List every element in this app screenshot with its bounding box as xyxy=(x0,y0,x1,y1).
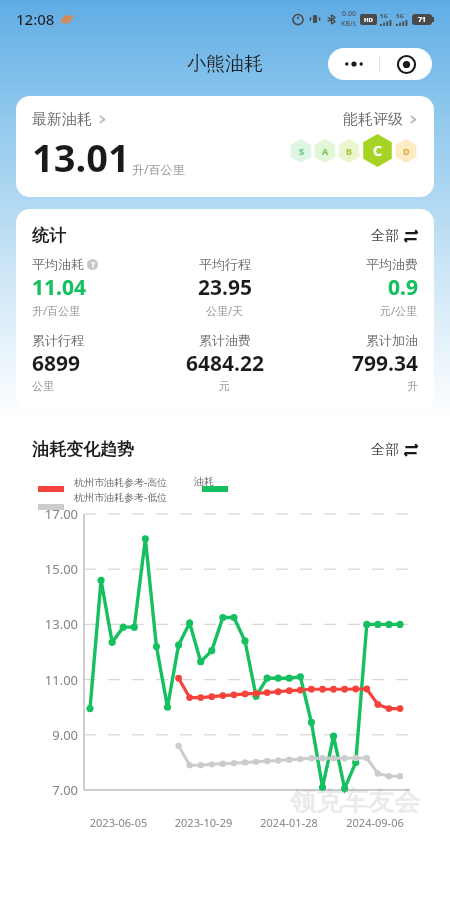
staticText: 5G xyxy=(396,12,404,20)
staticText: 2024-09-06 xyxy=(332,815,418,830)
staticText: 元 xyxy=(219,379,230,393)
button[interactable]: S xyxy=(289,139,313,163)
staticText: 元/公里 xyxy=(380,303,418,318)
button[interactable]: More options xyxy=(328,48,379,80)
staticText: 累计油费 xyxy=(199,332,251,348)
staticText: 公里/天 xyxy=(206,303,244,318)
staticText: 平均油费 xyxy=(366,256,418,272)
staticText: HD xyxy=(364,16,373,24)
staticText: 13.00 xyxy=(30,615,78,633)
staticText: 799.34 xyxy=(352,349,418,378)
staticText: 9.00 xyxy=(30,726,78,744)
staticText: 6484.22 xyxy=(186,349,264,378)
staticText: 2024-01-28 xyxy=(246,815,332,830)
staticText: B xyxy=(346,145,352,157)
staticText: 2023-10-29 xyxy=(161,815,246,830)
staticText: KB/s xyxy=(341,19,357,29)
button[interactable]: D xyxy=(394,139,418,163)
staticText: 全部 xyxy=(371,441,399,459)
staticText: 全部 xyxy=(371,227,399,245)
staticText: 15.00 xyxy=(30,560,78,578)
staticText: ? xyxy=(91,259,95,270)
staticText: 升 xyxy=(407,379,418,393)
staticText: 统计 xyxy=(32,225,66,246)
button[interactable]: 全部 xyxy=(371,441,418,459)
staticText: 油耗 xyxy=(194,475,214,488)
staticText: 小熊油耗 xyxy=(187,52,263,76)
button[interactable]: 最新油耗 xyxy=(32,110,107,129)
staticText: 公里 xyxy=(32,379,54,393)
staticText: 5G xyxy=(380,12,388,20)
staticText: 杭州市油耗参考-高位 xyxy=(74,475,168,489)
button[interactable]: 全部 xyxy=(371,227,418,245)
staticText: 能耗评级 xyxy=(343,110,403,129)
button[interactable]: C xyxy=(361,134,394,167)
staticText: 12:08 xyxy=(16,9,55,29)
button[interactable]: A xyxy=(313,139,337,163)
staticText: 领克车友会 xyxy=(290,785,420,818)
staticText: 7.00 xyxy=(30,781,78,799)
staticText: 71 xyxy=(418,15,427,25)
staticText: 最新油耗 xyxy=(32,110,92,129)
staticText: S xyxy=(299,145,304,157)
staticText: 0.9 xyxy=(388,273,418,302)
staticText: 23.95 xyxy=(198,273,252,302)
staticText: 升/百公里 xyxy=(32,303,81,318)
staticText: C xyxy=(373,141,382,160)
staticText: 0.00 xyxy=(342,9,356,19)
staticText: 13.01 xyxy=(32,131,130,183)
staticText: 油耗变化趋势 xyxy=(32,439,134,460)
staticText: 17.00 xyxy=(30,505,78,523)
button[interactable]: Account xyxy=(380,48,432,80)
staticText: 平均油耗 xyxy=(32,256,84,272)
staticText: 6899 xyxy=(32,349,81,378)
button[interactable]: 能耗评级 xyxy=(343,110,418,129)
staticText: 升/百公里 xyxy=(132,161,185,177)
staticText: 11.00 xyxy=(30,671,78,689)
staticText: 累计加油 xyxy=(366,332,418,348)
staticText: A xyxy=(322,145,329,157)
staticText: 杭州市油耗参考-低位 xyxy=(74,490,168,504)
staticText: 累计行程 xyxy=(32,332,84,348)
staticText: 平均行程 xyxy=(199,256,251,272)
staticText: 2023-06-05 xyxy=(76,815,161,830)
staticText: D xyxy=(403,145,410,157)
button[interactable]: B xyxy=(337,139,361,163)
staticText: 11.04 xyxy=(32,273,86,302)
